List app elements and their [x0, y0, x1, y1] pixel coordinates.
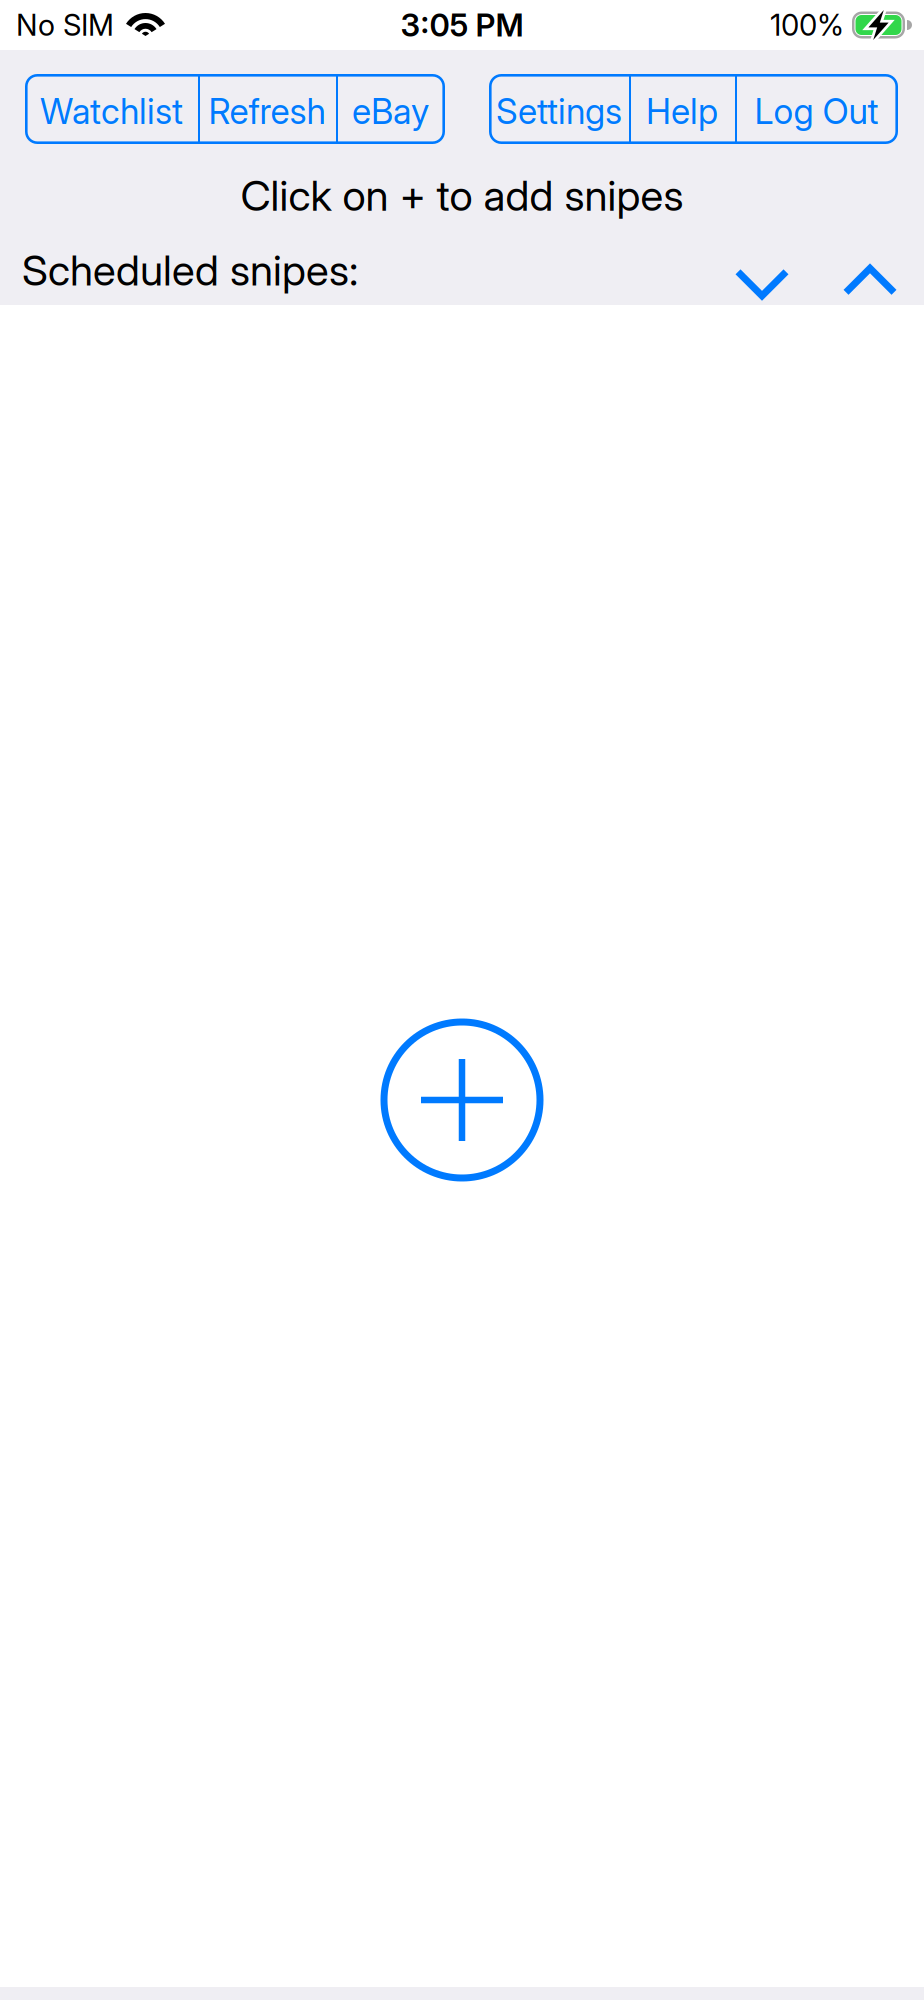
button[interactable]: eBay — [336, 74, 445, 144]
button[interactable]: Settings — [489, 74, 629, 144]
staticText: Watchlist — [40, 90, 183, 132]
button[interactable]: Collapse list — [734, 268, 790, 300]
button[interactable]: Log Out — [735, 74, 898, 144]
staticText: Log Out — [754, 90, 878, 132]
staticText: Help — [646, 90, 718, 132]
button[interactable]: Refresh — [198, 74, 336, 144]
staticText: No SIM — [16, 7, 114, 43]
staticText: Refresh — [208, 90, 325, 132]
button[interactable]: Watchlist — [25, 74, 198, 144]
button[interactable]: Help — [629, 74, 735, 144]
staticText: Scheduled snipes: — [22, 245, 358, 296]
button[interactable]: Expand list — [842, 264, 898, 296]
staticText: 3:05 PM — [400, 6, 523, 44]
staticText: Click on + to add snipes — [240, 170, 683, 221]
staticText: Settings — [496, 90, 622, 132]
button[interactable]: Add snipe — [380, 1018, 543, 1181]
staticText: eBay — [352, 90, 429, 132]
staticText: 100% — [770, 7, 844, 43]
